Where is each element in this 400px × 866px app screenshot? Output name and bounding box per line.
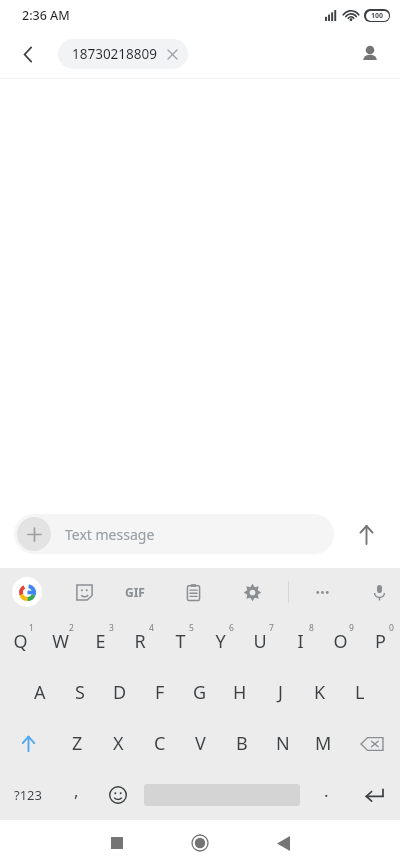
button[interactable]: F [140, 667, 180, 718]
staticText: L [355, 680, 365, 705]
button[interactable]: Voice input [362, 575, 396, 609]
staticText: B [236, 731, 248, 756]
staticText: I [297, 629, 304, 654]
staticText: T [175, 629, 186, 654]
button[interactable]: Back [10, 36, 46, 72]
staticText: 0 [389, 622, 394, 634]
button[interactable]: Y [200, 616, 240, 667]
staticText: 6 [229, 622, 234, 634]
button[interactable]: Stickers [67, 575, 101, 609]
button[interactable]: V [180, 718, 221, 769]
button[interactable]: Contact details [352, 36, 388, 72]
staticText: R [134, 629, 146, 654]
button[interactable]: N [262, 718, 303, 769]
button[interactable]: Backspace [344, 718, 400, 769]
button[interactable]: Google search [12, 577, 42, 607]
staticText: 8 [309, 622, 314, 634]
button[interactable]: ?123 [0, 769, 56, 820]
button[interactable]: B [221, 718, 262, 769]
button[interactable]: P [360, 616, 400, 667]
button[interactable]: A [20, 667, 60, 718]
staticText: ?123 [14, 786, 42, 804]
button[interactable]: Emoji [96, 769, 140, 820]
staticText: V [195, 731, 206, 756]
button[interactable]: Z [56, 718, 98, 769]
button[interactable]: W [40, 616, 80, 667]
button[interactable]: Space [140, 769, 304, 820]
staticText: Text message [65, 525, 155, 544]
button[interactable]: D [100, 667, 140, 718]
staticText: 2 [69, 622, 74, 634]
button[interactable]: X [98, 718, 139, 769]
button[interactable]: 18730218809 [58, 39, 188, 69]
staticText: E [95, 629, 106, 654]
staticText: G [193, 680, 207, 705]
button[interactable]: , [56, 769, 96, 820]
staticText: Y [215, 629, 226, 654]
staticText: GIF [125, 584, 145, 600]
staticText: W [52, 629, 69, 654]
staticText: C [154, 731, 166, 756]
button[interactable]: K [300, 667, 340, 718]
staticText: K [314, 680, 326, 705]
staticText: , [74, 779, 79, 802]
staticText: 4 [149, 622, 154, 634]
staticText: N [276, 731, 290, 756]
staticText: Q [13, 629, 28, 654]
button[interactable]: Text message [14, 514, 334, 554]
staticText: D [113, 680, 127, 705]
staticText: M [315, 731, 332, 756]
button[interactable]: Clipboard [176, 575, 210, 609]
staticText: 100 [371, 11, 384, 21]
staticText: F [155, 680, 165, 705]
button[interactable]: . [304, 769, 348, 820]
staticText: U [253, 629, 267, 654]
button[interactable]: S [60, 667, 100, 718]
button[interactable]: Send [346, 514, 386, 554]
button[interactable]: Settings [235, 575, 269, 609]
staticText: Z [72, 731, 83, 756]
staticText: 1 [29, 622, 34, 634]
button[interactable]: E [80, 616, 120, 667]
button[interactable]: U [240, 616, 280, 667]
staticText: J [278, 680, 283, 705]
button[interactable]: Back [260, 820, 306, 866]
staticText: O [333, 629, 348, 654]
button[interactable]: GIF [118, 575, 152, 609]
staticText: X [113, 731, 124, 756]
button[interactable]: Q [0, 616, 40, 667]
staticText: 3 [109, 622, 114, 634]
staticText: S [75, 680, 85, 705]
button[interactable]: G [180, 667, 220, 718]
button[interactable]: H [220, 667, 260, 718]
button[interactable]: Enter [348, 769, 400, 820]
button[interactable]: M [303, 718, 344, 769]
staticText: . [324, 779, 329, 802]
button[interactable]: O [320, 616, 360, 667]
button[interactable]: J [260, 667, 300, 718]
staticText: P [375, 629, 386, 654]
button[interactable]: Shift [0, 718, 56, 769]
button[interactable]: C [139, 718, 180, 769]
staticText: 5 [189, 622, 194, 634]
button[interactable]: More options [305, 575, 339, 609]
button[interactable]: R [120, 616, 160, 667]
staticText: 7 [269, 622, 274, 634]
button[interactable]: Home [177, 820, 223, 866]
staticText: 9 [349, 622, 354, 634]
staticText: 2:36 AM [22, 7, 70, 24]
staticText: 18730218809 [72, 45, 157, 63]
staticText: H [233, 680, 247, 705]
button[interactable]: L [340, 667, 380, 718]
button[interactable]: T [160, 616, 200, 667]
button[interactable]: I [280, 616, 320, 667]
staticText: A [34, 680, 46, 705]
button[interactable]: Recents [94, 820, 140, 866]
